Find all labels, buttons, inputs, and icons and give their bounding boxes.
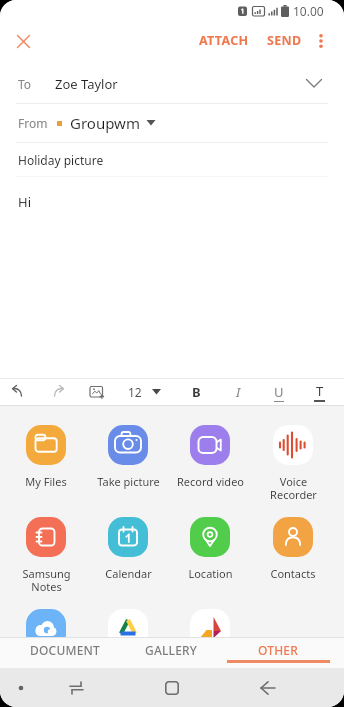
button[interactable] xyxy=(314,29,328,53)
button[interactable] xyxy=(250,670,286,706)
staticText: 10.00 xyxy=(293,3,324,19)
staticText: T xyxy=(316,382,324,400)
button[interactable] xyxy=(58,670,94,706)
staticText: Samsung Notes xyxy=(22,566,71,594)
button[interactable] xyxy=(8,26,38,56)
button[interactable]: Location xyxy=(170,517,250,581)
button[interactable]: DOCUMENT xyxy=(12,638,118,668)
button[interactable] xyxy=(88,609,168,637)
button[interactable]: SEND xyxy=(262,26,307,55)
button[interactable]: Voice Recorder xyxy=(253,425,333,502)
button[interactable] xyxy=(50,383,68,401)
button[interactable]: Hi xyxy=(0,177,344,378)
staticText: I xyxy=(236,383,241,401)
staticText: Hi xyxy=(18,193,31,211)
button[interactable] xyxy=(88,383,106,401)
staticText: DOCUMENT xyxy=(30,642,101,658)
button[interactable]: To xyxy=(0,57,344,103)
staticText: From xyxy=(18,115,48,131)
staticText: Voice Recorder xyxy=(270,474,317,502)
staticText: SEND xyxy=(267,32,302,49)
button[interactable] xyxy=(6,609,86,637)
staticText: 12 xyxy=(128,384,142,400)
button[interactable] xyxy=(154,670,190,706)
button[interactable] xyxy=(170,609,250,637)
button[interactable]: From xyxy=(0,104,344,142)
staticText: Record video xyxy=(177,474,244,489)
staticText: Location xyxy=(188,566,233,581)
button[interactable]: Record video xyxy=(170,425,250,489)
staticText: ATTACH xyxy=(199,32,249,49)
staticText: Calendar xyxy=(105,566,152,581)
staticText: B xyxy=(192,383,201,401)
staticText: Take picture xyxy=(97,474,160,489)
staticText: Holiday picture xyxy=(18,152,104,168)
button[interactable]: OTHER xyxy=(225,638,332,668)
staticText: Groupwm xyxy=(70,113,140,133)
button[interactable]: ATTACH xyxy=(194,26,254,55)
button[interactable]: Contacts xyxy=(253,517,333,581)
staticText: U xyxy=(274,383,284,401)
staticText: To xyxy=(18,76,32,92)
button[interactable]: GALLERY xyxy=(118,638,225,668)
button[interactable] xyxy=(8,383,26,401)
button[interactable]: My Files xyxy=(6,425,86,489)
staticText: GALLERY xyxy=(145,642,198,658)
button[interactable]: Take picture xyxy=(88,425,168,489)
staticText: Zoe Taylor xyxy=(55,75,118,93)
staticText: Contacts xyxy=(270,566,316,581)
button[interactable]: Calendar xyxy=(88,517,168,581)
button[interactable]: Samsung Notes xyxy=(6,517,86,594)
button[interactable]: Holiday picture xyxy=(0,143,344,176)
staticText: OTHER xyxy=(258,642,299,658)
staticText: My Files xyxy=(25,474,67,489)
